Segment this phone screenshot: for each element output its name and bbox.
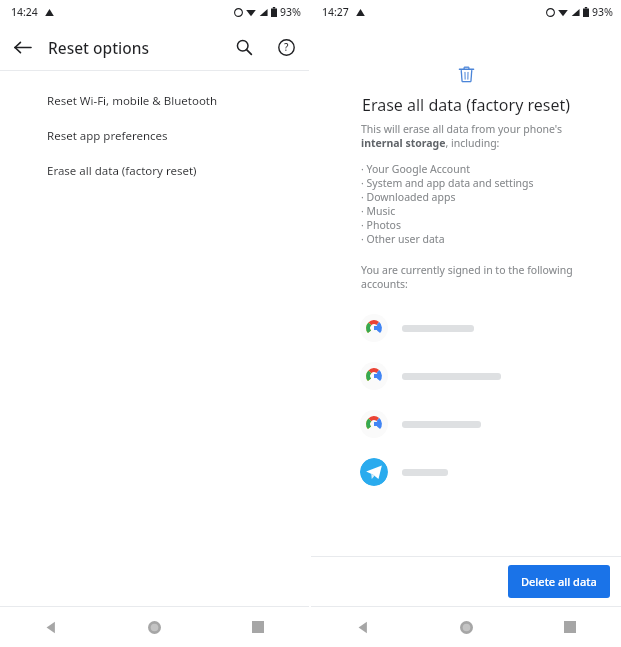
button[interactable]: Erase all data (factory reset) bbox=[0, 153, 309, 188]
button[interactable]: Back bbox=[311, 607, 415, 647]
staticText: 14:27 bbox=[322, 5, 349, 19]
staticText: · Your Google Account bbox=[361, 162, 470, 176]
button[interactable]: Home bbox=[103, 607, 206, 647]
staticText: · System and app data and settings bbox=[361, 176, 534, 190]
button[interactable] bbox=[311, 448, 621, 496]
button[interactable]: Recent apps bbox=[518, 607, 621, 647]
staticText: Erase all data (factory reset) bbox=[47, 163, 197, 179]
staticText: 93% bbox=[280, 5, 301, 19]
button[interactable]: Navigate up bbox=[0, 25, 44, 69]
staticText: · Music bbox=[361, 204, 396, 218]
button[interactable] bbox=[311, 304, 621, 352]
button[interactable]: Delete all data bbox=[508, 565, 610, 598]
staticText: ? bbox=[284, 40, 289, 54]
button[interactable]: Back bbox=[0, 607, 103, 647]
button[interactable]: Reset app preferences bbox=[0, 118, 309, 153]
staticText: Delete all data bbox=[521, 574, 597, 589]
button[interactable]: Reset Wi-Fi, mobile & Bluetooth bbox=[0, 83, 309, 118]
other: Erase icon bbox=[458, 66, 475, 83]
staticText: You are currently signed in to the follo… bbox=[361, 263, 573, 291]
staticText: 14:24 bbox=[11, 5, 38, 19]
staticText: Reset Wi-Fi, mobile & Bluetooth bbox=[47, 93, 218, 109]
button[interactable]: Help bbox=[265, 26, 307, 68]
button[interactable]: Recent apps bbox=[206, 607, 309, 647]
button[interactable]: Search bbox=[223, 26, 265, 68]
staticText: · Downloaded apps bbox=[361, 190, 456, 204]
staticText: 93% bbox=[592, 5, 613, 19]
staticText: Reset options bbox=[48, 37, 150, 58]
button[interactable] bbox=[311, 352, 621, 400]
staticText: · Other user data bbox=[361, 232, 445, 246]
button[interactable] bbox=[311, 400, 621, 448]
staticText: Erase all data (factory reset) bbox=[362, 94, 571, 116]
button[interactable]: Home bbox=[415, 607, 518, 647]
staticText: This will erase all data from your phone… bbox=[361, 122, 562, 150]
staticText: Reset app preferences bbox=[47, 128, 168, 144]
staticText: · Photos bbox=[361, 218, 401, 232]
